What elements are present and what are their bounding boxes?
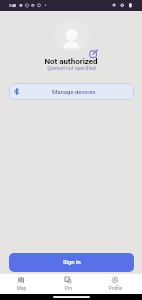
staticText: @email not specified bbox=[47, 65, 96, 71]
staticText: Pro bbox=[65, 286, 72, 291]
button[interactable]: Sign in bbox=[9, 253, 134, 272]
staticText: Map bbox=[17, 286, 26, 291]
button[interactable]: Profile photo bbox=[55, 18, 89, 52]
staticText: 7:48 bbox=[9, 4, 17, 8]
staticText: Not authorized bbox=[44, 57, 98, 66]
button[interactable]: Pro bbox=[52, 274, 84, 295]
button[interactable]: Profile bbox=[99, 274, 131, 295]
staticText: Sign in bbox=[63, 259, 81, 266]
staticText: Profile bbox=[109, 286, 122, 291]
button[interactable]: Map bbox=[5, 274, 37, 295]
staticText: Manage devices bbox=[52, 88, 96, 95]
button[interactable]: Edit profile bbox=[89, 49, 98, 58]
button[interactable]: Manage devices bbox=[9, 83, 134, 100]
